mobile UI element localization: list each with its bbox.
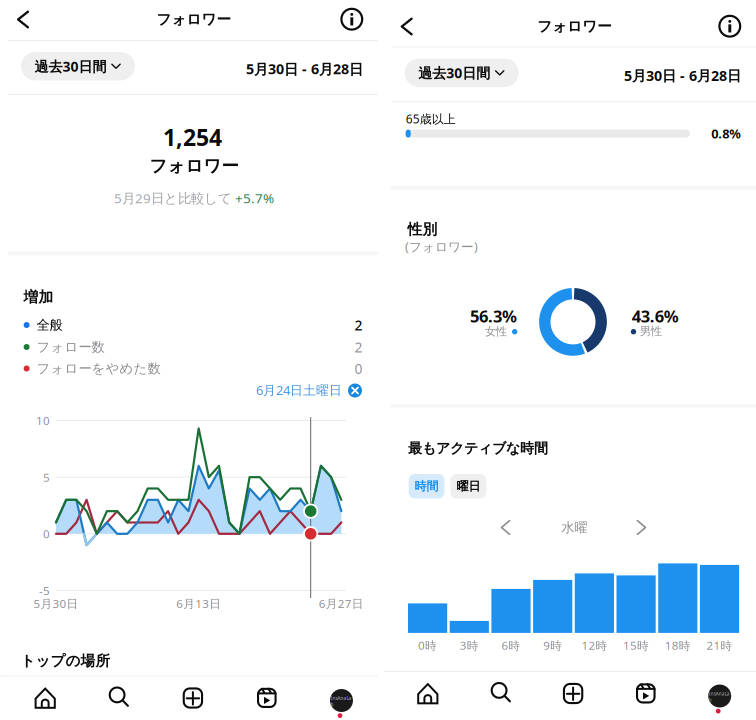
staticText: 1,254 [163,121,222,153]
staticText: 過去30日間 [34,57,106,76]
staticText: 10 [36,413,50,428]
staticText: (フォロワー) [405,238,478,255]
button[interactable]: 作成 [537,672,609,720]
staticText: 時間 [415,479,439,494]
staticText: 5 [43,469,50,485]
staticText: 水曜 [561,519,587,536]
staticText: フォロー数 [36,339,104,355]
staticText: 12時 [581,637,607,653]
staticText: 6月24日土曜日 [256,381,342,399]
staticText: 0.8% [711,125,741,142]
button[interactable]: プロフィール [682,672,754,720]
staticText: 56.3% [470,305,517,327]
staticText: InsAnaLab [709,691,731,703]
staticText: 全般 [36,317,62,333]
button[interactable]: 検索 [82,676,154,720]
button[interactable]: ホーム [392,672,464,720]
button[interactable]: 曜日 [450,474,486,498]
staticText: 男性 [640,324,662,338]
staticText: フォロワー [149,155,238,177]
staticText: 9時 [543,637,562,653]
staticText: 65歳以上 [406,111,456,127]
staticText: 増加 [24,288,54,306]
staticText: 15時 [623,637,649,653]
staticText: 6月27日 [319,596,364,611]
staticText: 性別 [407,220,437,239]
button[interactable]: 戻る [6,2,40,36]
staticText: 2 [355,316,363,334]
staticText: 曜日 [456,479,480,494]
button[interactable]: 時間 [409,474,444,498]
button[interactable]: 過去30日間 [405,59,519,87]
staticText: フォローをやめた数 [36,360,160,377]
staticText: 5月30日 - 6月28日 [246,59,363,78]
staticText: 18時 [665,637,691,653]
staticText: 過去30日間 [418,63,490,82]
staticText: 43.6% [632,305,679,327]
staticText: 3時 [460,637,479,653]
staticText: 2 [355,338,363,356]
staticText: 21時 [706,637,732,653]
staticText: 最もアクティブな時間 [408,439,548,457]
button[interactable]: 過去30日間 [21,52,135,80]
staticText: 0 [43,526,50,542]
staticText: 0時 [418,637,437,653]
button[interactable]: 前の曜日 [492,513,519,542]
staticText: 0 [355,359,363,378]
staticText: フォロワー [537,17,612,36]
button[interactable]: 次の曜日 [628,513,655,542]
button[interactable]: リール [610,672,682,720]
button[interactable]: 情報 [337,4,367,34]
staticText: 5月30日 - 6月28日 [624,66,741,85]
button[interactable]: 選択した日を解除 [348,383,362,397]
staticText: フォロワー [156,10,231,29]
button[interactable]: 情報 [715,11,745,41]
staticText: 5月29日と比較して [114,189,232,207]
staticText: -5 [39,582,50,598]
staticText: +5.7% [235,189,274,207]
staticText: トップの場所 [20,652,110,670]
button[interactable]: 検索 [464,672,536,720]
button[interactable]: 作成 [157,676,229,720]
button[interactable]: プロフィール [304,676,376,720]
button[interactable]: リール [231,676,303,720]
staticText: 6月13日 [176,596,221,611]
staticText: 6時 [501,637,520,653]
button[interactable]: ホーム [9,676,81,720]
staticText: InsAnaLab [330,695,352,707]
staticText: 5月30日 [33,596,78,611]
button[interactable]: 戻る [390,9,424,43]
staticText: 女性 [485,324,507,339]
